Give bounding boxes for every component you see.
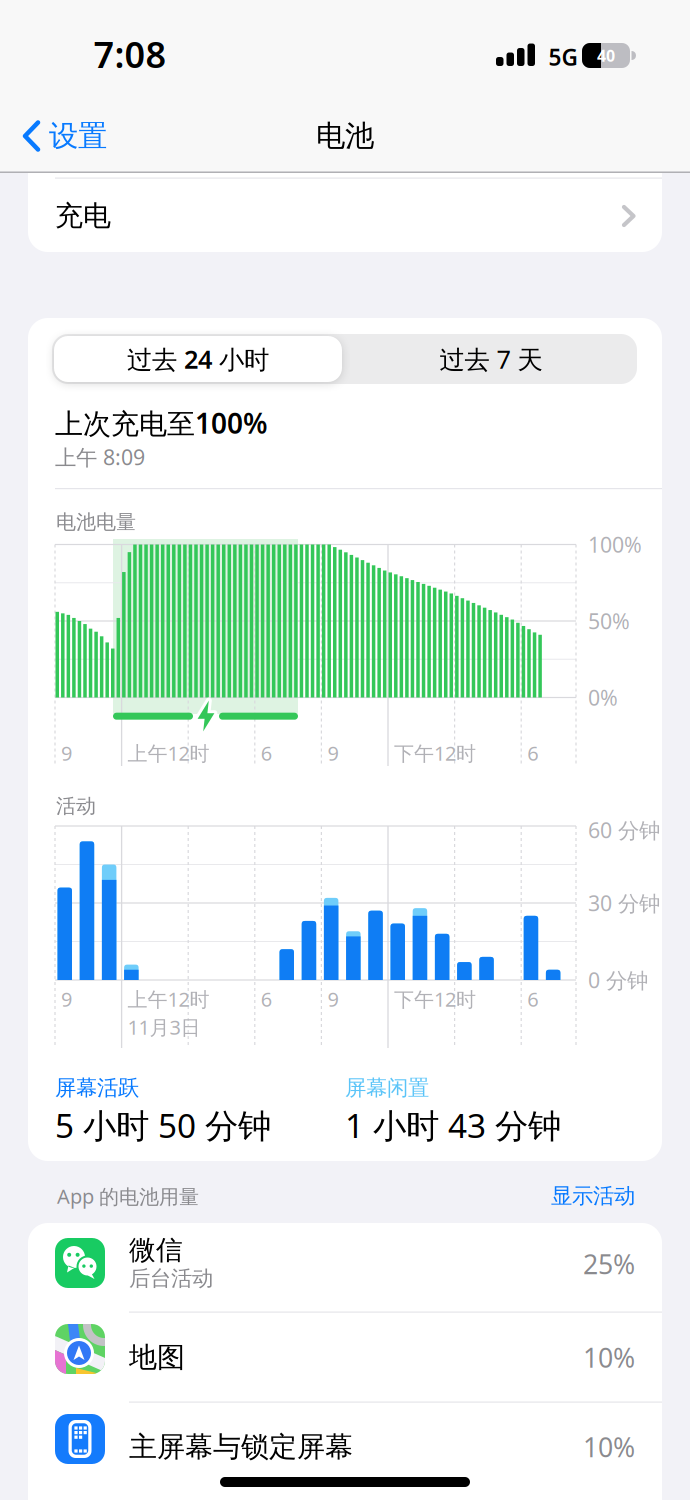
staticText: 设置 <box>49 118 107 154</box>
staticText: 5G <box>548 42 577 72</box>
staticText: 0 分钟 <box>588 966 648 994</box>
staticText: 10% <box>583 1429 635 1465</box>
staticText: 上次充电至100% <box>55 404 268 442</box>
staticText: 9 <box>327 986 338 1012</box>
staticText: 1 小时 43 分钟 <box>345 1103 561 1147</box>
button[interactable]: 主屏幕与锁定屏幕 <box>28 1402 662 1491</box>
staticText: 过去 24 小时 <box>127 342 269 376</box>
staticText: 50% <box>588 607 630 635</box>
staticText: 60 分钟 <box>588 816 660 844</box>
button[interactable]: 过去 7 天 <box>347 336 635 382</box>
staticText: 上午12时 <box>128 986 210 1012</box>
button[interactable]: 充电 <box>28 179 662 252</box>
staticText: 40 <box>597 45 615 66</box>
staticText: 9 <box>61 740 72 766</box>
staticText: 10% <box>583 1340 635 1375</box>
staticText: 11月3日 <box>128 1014 201 1040</box>
staticText: 7:08 <box>93 30 166 78</box>
button[interactable]: 地图 <box>28 1312 662 1401</box>
staticText: App 的电池用量 <box>57 1183 199 1209</box>
staticText: 9 <box>327 740 338 766</box>
staticText: 上午 8:09 <box>55 443 145 471</box>
staticText: 25% <box>583 1246 635 1282</box>
staticText: 30 分钟 <box>588 889 660 917</box>
button[interactable]: 显示活动 <box>475 1180 635 1212</box>
staticText: 后台活动 <box>129 1265 213 1292</box>
staticText: 下午12时 <box>394 740 476 766</box>
staticText: 上午12时 <box>128 740 210 766</box>
staticText: 6 <box>527 740 538 766</box>
staticText: 显示活动 <box>551 1183 635 1209</box>
staticText: 下午12时 <box>394 986 476 1012</box>
staticText: 5 小时 50 分钟 <box>55 1103 271 1147</box>
staticText: 微信 <box>129 1234 183 1266</box>
button[interactable]: 过去 24 小时 <box>54 336 342 382</box>
button[interactable]: 设置 <box>23 118 107 154</box>
staticText: 电池电量 <box>56 510 136 534</box>
staticText: 6 <box>261 740 272 766</box>
staticText: 主屏幕与锁定屏幕 <box>129 1430 353 1464</box>
button[interactable]: 微信 <box>28 1223 662 1312</box>
staticText: 电池 <box>316 118 374 154</box>
staticText: 0% <box>588 683 618 712</box>
staticText: 屏幕活跃 <box>55 1075 139 1101</box>
staticText: 充电 <box>55 199 111 233</box>
staticText: 6 <box>261 986 272 1012</box>
staticText: 地图 <box>129 1340 185 1375</box>
staticText: 100% <box>588 530 642 559</box>
staticText: 6 <box>527 986 538 1012</box>
staticText: 活动 <box>56 794 96 818</box>
staticText: 过去 7 天 <box>439 342 542 376</box>
staticText: 9 <box>61 986 72 1012</box>
staticText: 屏幕闲置 <box>345 1075 429 1101</box>
